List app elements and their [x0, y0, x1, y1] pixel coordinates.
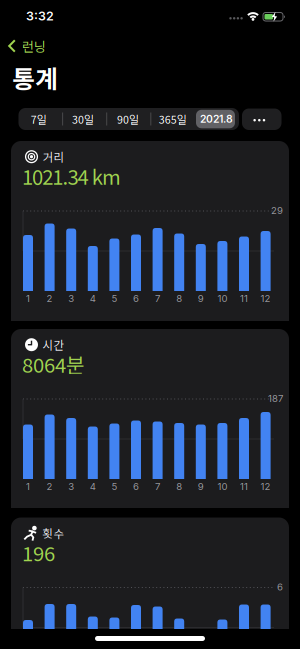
staticText: 런닝 [22, 36, 46, 55]
staticText: 7 [155, 293, 160, 304]
staticText: 6 [277, 581, 283, 593]
staticText: 4 [90, 293, 96, 304]
staticText: 10 [217, 481, 227, 492]
staticText: 시간 [42, 336, 64, 353]
staticText: 3 [68, 293, 74, 304]
staticText: 7 [155, 481, 160, 492]
staticText: 6 [133, 293, 139, 304]
button[interactable]: 90일 [105, 108, 150, 130]
staticText: 횟수 [42, 525, 64, 541]
staticText: 11 [240, 293, 248, 304]
staticText: 90일 [117, 111, 139, 127]
staticText: 12 [261, 481, 271, 492]
staticText: 2 [47, 481, 53, 492]
staticText: 1021.34 km [22, 161, 121, 191]
button[interactable]: More [242, 108, 281, 130]
staticText: 10 [217, 293, 227, 304]
button[interactable]: 30일 [60, 108, 105, 130]
staticText: 12 [261, 293, 271, 304]
staticText: 8 [176, 293, 182, 304]
button[interactable]: 365일 [150, 108, 195, 130]
staticText: 9 [198, 481, 204, 492]
staticText: 8064분 [22, 349, 85, 379]
button[interactable]: Back [8, 36, 46, 55]
staticText: 통계 [12, 60, 58, 95]
staticText: 2 [47, 293, 53, 304]
staticText: 5 [111, 481, 117, 492]
staticText: 2021.8 [200, 113, 233, 125]
staticText: 7일 [31, 111, 47, 127]
button[interactable]: 2021.8 [194, 108, 239, 130]
staticText: 3:32 [26, 8, 54, 23]
staticText: 8 [176, 481, 182, 492]
staticText: 1 [26, 293, 30, 304]
staticText: 29 [271, 205, 283, 216]
staticText: 6 [133, 481, 139, 492]
staticText: 9 [198, 293, 204, 304]
staticText: 5 [111, 293, 117, 304]
staticText: 11 [240, 481, 248, 492]
staticText: 365일 [159, 111, 187, 127]
staticText: 1 [26, 481, 30, 492]
staticText: 30일 [72, 111, 94, 127]
staticText: 196 [22, 538, 55, 567]
staticText: 187 [268, 393, 283, 404]
staticText: 3 [68, 481, 74, 492]
button[interactable]: 7일 [16, 108, 61, 130]
staticText: 거리 [42, 148, 64, 165]
staticText: 4 [90, 481, 96, 492]
